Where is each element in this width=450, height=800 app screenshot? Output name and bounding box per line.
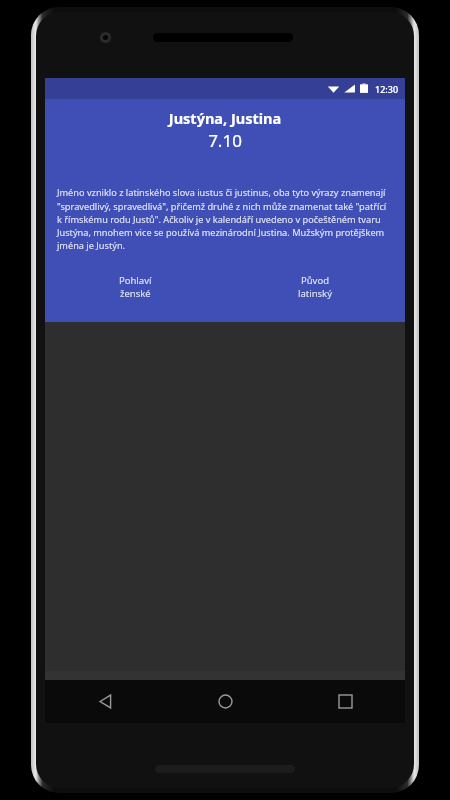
button[interactable]: Back — [45, 680, 165, 723]
staticText: ženské — [120, 287, 151, 300]
staticText: Pohlaví — [119, 274, 152, 287]
staticText: latinský — [298, 287, 333, 300]
staticText: 7.10 — [45, 129, 405, 152]
staticText: 12:30 — [375, 83, 399, 95]
staticText: Calendář — [205, 701, 246, 714]
button[interactable]: Recent apps — [285, 680, 405, 723]
button[interactable]: Nastavení — [285, 671, 405, 723]
staticText: Původ — [301, 274, 330, 287]
staticText: Justýna, Justina — [45, 108, 405, 128]
staticText: Jméno vzniklo z latinského slova iustus … — [57, 186, 393, 251]
staticText: Den — [96, 701, 115, 714]
button[interactable]: Back — [45, 680, 405, 723]
button[interactable]: Calendář — [165, 671, 285, 723]
button[interactable]: Home — [165, 680, 285, 723]
staticText: Nastavení — [323, 701, 368, 714]
button[interactable]: Den — [45, 671, 165, 723]
